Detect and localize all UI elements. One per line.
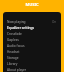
staticText: Crossfade [7, 32, 22, 36]
staticText: Equalizer settings [7, 26, 35, 30]
button[interactable]: About player [5, 67, 59, 72]
staticText: Storage [7, 56, 19, 60]
staticText: Library [7, 62, 18, 66]
button[interactable]: Now playing [5, 19, 59, 25]
button[interactable]: Headset [5, 49, 59, 55]
staticText: Audio focus [7, 44, 25, 48]
button[interactable]: Storage [5, 55, 59, 61]
button[interactable]: Equalizer settings [5, 25, 59, 31]
button[interactable]: Crossfade [5, 31, 59, 37]
button[interactable]: Audio focus [5, 43, 59, 49]
staticText: Now playing [7, 20, 26, 24]
staticText: Gapless [7, 38, 19, 42]
button[interactable]: Library [5, 61, 59, 67]
staticText: MUSIC [25, 2, 39, 7]
staticText: About player [7, 68, 27, 72]
staticText: Headset [7, 50, 20, 54]
button[interactable]: Gapless [5, 37, 59, 43]
staticText: On [52, 20, 57, 24]
